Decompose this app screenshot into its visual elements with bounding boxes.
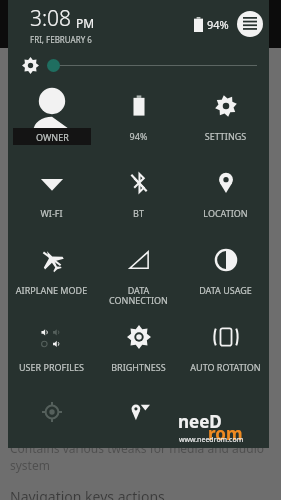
button[interactable]: USER PROFILES	[8, 313, 95, 390]
staticText: FRI, FEBRUARY 6	[30, 34, 92, 45]
staticText: DATA USAGE	[182, 284, 269, 296]
staticText: WI-FI	[8, 207, 95, 219]
staticText: rom	[208, 422, 243, 445]
staticText: AIRPLANE MODE	[8, 284, 95, 296]
button[interactable]: DATA CONNECTION	[95, 236, 182, 313]
button[interactable]: AUTO ROTATION	[182, 313, 269, 390]
button[interactable]: Quick settings list	[237, 11, 263, 37]
staticText: www.needrom.com	[179, 435, 244, 445]
button[interactable]: WI-FI	[8, 159, 95, 236]
button[interactable]: 94%	[95, 82, 182, 159]
staticText: system	[10, 457, 50, 473]
staticText: LOCATION	[182, 207, 269, 219]
staticText: Contains various tweaks for media and au…	[10, 440, 264, 456]
staticText: AUTO ROTATION	[182, 361, 269, 373]
staticText: USER PROFILES	[8, 361, 95, 373]
button[interactable]: Auto brightness	[16, 51, 44, 79]
staticText: 3:08	[30, 4, 72, 33]
staticText: 94%	[207, 17, 229, 32]
button[interactable]: AIRPLANE MODE	[8, 236, 95, 313]
staticText: BT	[95, 207, 182, 219]
staticText: 94%	[95, 130, 182, 142]
staticText: neeD	[178, 410, 222, 433]
staticText: Navigation keys actions	[10, 487, 165, 500]
button[interactable]: DATA USAGE	[182, 236, 269, 313]
staticText: BRIGHTNESS	[95, 361, 182, 373]
button[interactable]	[8, 390, 95, 430]
button[interactable]	[95, 390, 182, 430]
staticText: DATA CONNECTION	[95, 284, 182, 307]
button[interactable]: BT	[95, 159, 182, 236]
button[interactable]: SETTINGS	[182, 82, 269, 159]
staticText: PM	[76, 15, 95, 31]
staticText: OWNER	[36, 131, 69, 143]
button[interactable]: OWNER	[8, 82, 95, 159]
button[interactable]	[182, 390, 269, 430]
button[interactable]: Brightness level	[47, 59, 60, 72]
staticText: SETTINGS	[182, 130, 269, 142]
button[interactable]: BRIGHTNESS	[95, 313, 182, 390]
button[interactable]: LOCATION	[182, 159, 269, 236]
